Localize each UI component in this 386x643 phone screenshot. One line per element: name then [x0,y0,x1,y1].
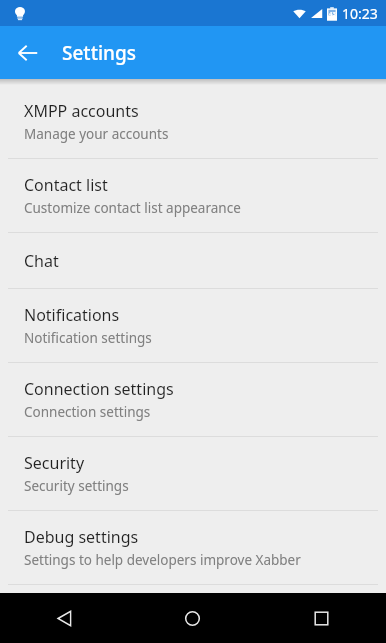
button[interactable]: Back [0,593,128,643]
staticText: Debug settings [24,526,139,548]
button[interactable]: Debug settings [0,511,386,584]
staticText: 10:23 [342,4,378,23]
staticText: Connection settings [24,403,151,421]
staticText: Settings to help developers improve Xabb… [24,551,301,569]
button[interactable]: Notifications [0,289,386,362]
staticText: Connection settings [24,378,174,400]
staticText: Security settings [24,477,129,495]
button[interactable]: Back [4,29,52,77]
staticText: Security [24,452,85,474]
staticText: Contact list [24,174,108,196]
staticText: Chat [24,250,59,272]
button[interactable]: Chat [0,233,386,288]
button[interactable]: Security [0,437,386,510]
button[interactable]: Recent apps [257,593,386,643]
staticText: Manage your accounts [24,125,169,143]
staticText: Notification settings [24,329,152,347]
staticText: Settings [62,40,136,66]
staticText: 43 [329,10,336,18]
staticText: Notifications [24,304,120,326]
button[interactable]: Connection settings [0,363,386,436]
staticText: Customize contact list appearance [24,199,241,217]
button[interactable]: XMPP accounts [0,85,386,158]
button[interactable]: Contact list [0,159,386,232]
staticText: XMPP accounts [24,100,139,122]
button[interactable]: Home [128,593,257,643]
